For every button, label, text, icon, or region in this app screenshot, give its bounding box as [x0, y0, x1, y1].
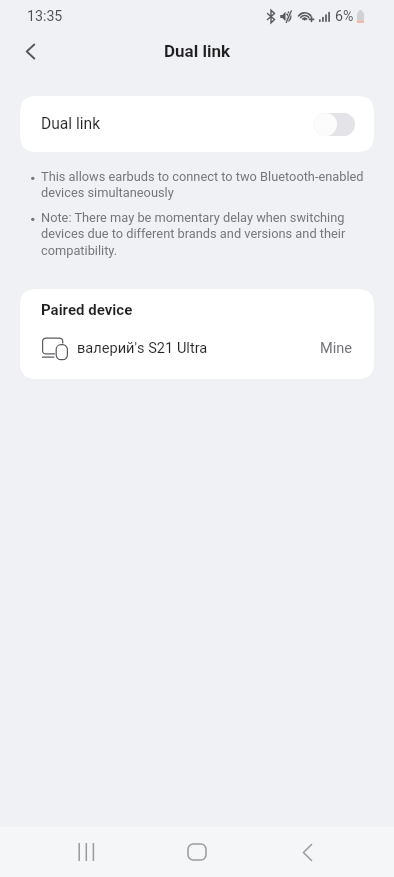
- staticText: валерий's S21 Ultra: [77, 339, 208, 356]
- button[interactable]: Dual link: [20, 96, 374, 152]
- button[interactable]: Back: [267, 827, 347, 877]
- staticText: Mine: [320, 339, 353, 356]
- button[interactable]: Recent apps: [46, 827, 126, 877]
- button[interactable]: валерий's S21 Ultra: [20, 319, 374, 379]
- staticText: 6%: [335, 8, 354, 25]
- staticText: Dual link: [41, 115, 101, 133]
- staticText: Note: There may be momentary delay when …: [41, 210, 370, 258]
- button[interactable]: Navigate up: [8, 29, 52, 73]
- staticText: 13:35: [27, 8, 63, 25]
- button[interactable]: Home: [157, 827, 237, 877]
- staticText: Paired device: [41, 301, 133, 319]
- staticText: Dual link: [164, 41, 231, 61]
- staticText: This allows earbuds to connect to two Bl…: [41, 169, 370, 200]
